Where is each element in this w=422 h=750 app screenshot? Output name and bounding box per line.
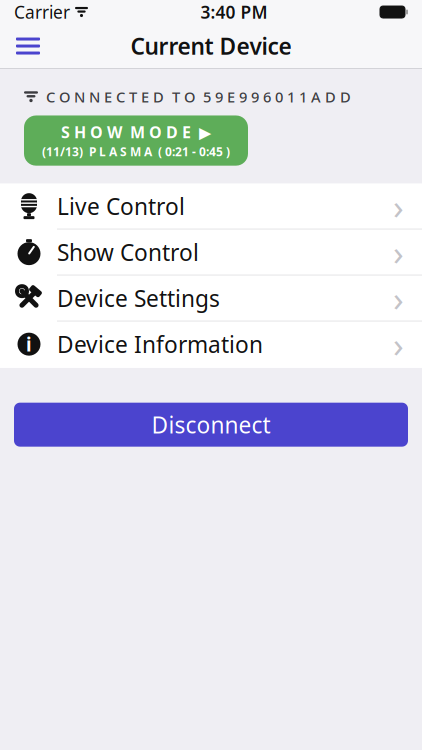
staticText: 3:40 PM: [200, 0, 267, 23]
staticText: Device Information: [57, 329, 263, 359]
staticText: Disconnect: [151, 410, 270, 440]
staticText: ›: [393, 183, 404, 229]
staticText: ›: [393, 275, 404, 321]
staticText: S H O W M O D E ▶: [61, 121, 211, 143]
button[interactable]: S H O W M O D E ▶: [24, 115, 248, 166]
button[interactable]: Disconnect: [14, 403, 408, 447]
staticText: C O N N E C T E D T O 5 9 E 9 9 6 0 1 1 …: [46, 87, 351, 106]
staticText: Device Settings: [57, 283, 220, 313]
button[interactable]: Show Control: [0, 230, 422, 276]
staticText: i: [26, 332, 32, 357]
staticText: Carrier: [14, 0, 70, 23]
staticText: ›: [393, 229, 404, 275]
staticText: Live Control: [57, 191, 185, 221]
button[interactable]: Menu: [6, 24, 50, 68]
staticText: Current Device: [130, 31, 291, 61]
button[interactable]: Live Control: [0, 184, 422, 230]
staticText: ›: [393, 321, 404, 367]
staticText: (11/13) P L A S M A ( 0:21 - 0:45 ): [42, 144, 230, 160]
button[interactable]: i: [0, 322, 422, 368]
button[interactable]: Device Settings: [0, 276, 422, 322]
staticText: Show Control: [57, 237, 199, 267]
